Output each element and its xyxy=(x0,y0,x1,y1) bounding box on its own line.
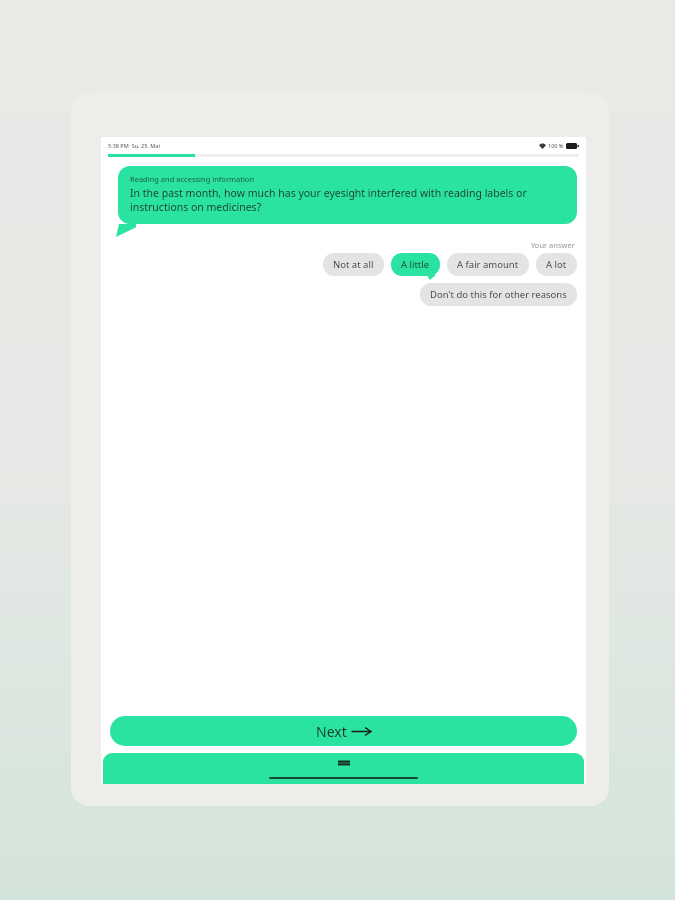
staticText: A fair amount xyxy=(457,258,519,271)
button[interactable]: A lot xyxy=(536,253,577,276)
staticText: 100 % xyxy=(548,142,564,149)
staticText: 5:38 PM Su. 25. Mai xyxy=(108,142,160,149)
button[interactable]: Next xyxy=(110,716,577,746)
staticText: Don't do this for other reasons xyxy=(430,288,567,301)
button[interactable]: A little xyxy=(391,253,440,276)
button[interactable]: Reading and accessing information xyxy=(118,166,577,224)
staticText: Reading and accessing information xyxy=(130,174,255,184)
staticText: A lot xyxy=(546,258,567,271)
button[interactable]: Not at all xyxy=(323,253,384,276)
button[interactable]: Menu xyxy=(103,753,584,784)
staticText: A little xyxy=(401,258,430,271)
staticText: Not at all xyxy=(333,258,374,271)
button[interactable]: A fair amount xyxy=(447,253,529,276)
staticText: In the past month, how much has your eye… xyxy=(130,186,567,214)
button[interactable]: Don't do this for other reasons xyxy=(420,283,577,306)
staticText: Next xyxy=(316,722,347,741)
staticText: Your answer xyxy=(531,240,575,250)
